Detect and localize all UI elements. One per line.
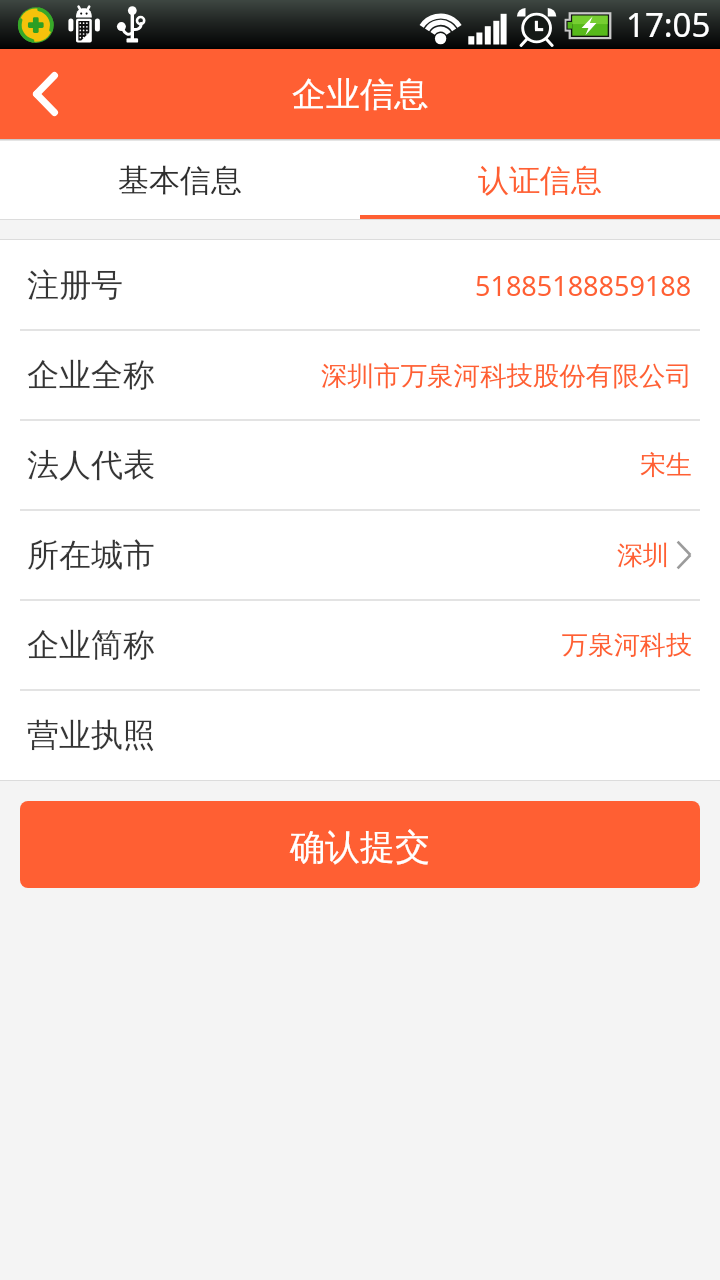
- button[interactable]: 企业简称: [0, 600, 720, 690]
- button[interactable]: 所在城市: [0, 510, 720, 600]
- staticText: 宋生: [640, 449, 692, 482]
- staticText: 深圳市万泉河科技股份有限公司: [321, 359, 692, 392]
- staticText: 万泉河科技: [562, 629, 692, 662]
- staticText: 深圳: [617, 539, 669, 572]
- staticText: 所在城市: [27, 535, 155, 575]
- staticText: 营业执照: [27, 715, 155, 755]
- staticText: 企业信息: [292, 73, 428, 116]
- staticText: 企业简称: [27, 625, 155, 665]
- button[interactable]: 确认提交: [20, 801, 700, 888]
- staticText: 确认提交: [290, 825, 430, 869]
- button[interactable]: 基本信息: [0, 141, 360, 219]
- button[interactable]: Back: [0, 49, 90, 139]
- staticText: 法人代表: [27, 445, 155, 485]
- button[interactable]: 认证信息: [360, 141, 720, 219]
- staticText: 51885188859188: [475, 267, 692, 304]
- staticText: 基本信息: [118, 161, 242, 200]
- staticText: 注册号: [27, 265, 123, 305]
- button[interactable]: 营业执照: [0, 690, 720, 780]
- button[interactable]: 注册号: [0, 240, 720, 330]
- staticText: 企业全称: [27, 355, 155, 395]
- staticText: 17:05: [626, 2, 711, 47]
- staticText: 认证信息: [478, 161, 602, 200]
- button[interactable]: 法人代表: [0, 420, 720, 510]
- button[interactable]: 企业全称: [0, 330, 720, 420]
